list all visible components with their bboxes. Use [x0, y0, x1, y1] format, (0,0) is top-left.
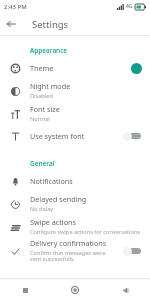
staticText: Settings — [32, 18, 69, 31]
button[interactable]: Toggle — [122, 130, 142, 142]
staticText: Delayed sending — [30, 194, 87, 204]
button[interactable]: Home — [65, 280, 85, 300]
button[interactable]: Delayed sending — [0, 192, 150, 215]
button[interactable]: Font size — [0, 102, 150, 125]
staticText: Theme — [30, 63, 54, 73]
staticText: Font size — [30, 104, 60, 114]
button[interactable]: Toggle — [122, 245, 142, 257]
staticText: Configure swipe actions for conversation… — [30, 228, 140, 236]
staticText: Appearance — [30, 46, 68, 55]
staticText: Confirm that messages were sent successf… — [30, 249, 118, 263]
staticText: Night mode — [30, 81, 71, 91]
button[interactable]: Recent apps — [15, 280, 35, 300]
button[interactable]: Theme colour — [131, 63, 142, 74]
button[interactable]: Swipe actions — [0, 215, 150, 238]
button[interactable]: Notifications — [0, 170, 150, 192]
staticText: Swipe actions — [30, 217, 76, 227]
staticText: Delivery confirmations — [30, 238, 107, 248]
staticText: No delay — [30, 205, 54, 213]
staticText: General — [30, 159, 55, 168]
staticText: Use system font — [30, 131, 85, 141]
button[interactable]: Use system font — [0, 125, 150, 147]
staticText: 2:43 PM — [4, 3, 27, 11]
button[interactable]: Back — [115, 280, 135, 300]
staticText: 4G — [126, 3, 133, 10]
button[interactable]: Theme — [0, 57, 150, 79]
staticText: Normal — [30, 115, 50, 123]
staticText: Notifications — [30, 176, 73, 186]
button[interactable]: Delivery confirmations — [0, 238, 150, 263]
button[interactable]: Night mode — [0, 79, 150, 102]
staticText: Disabled — [30, 92, 53, 100]
button[interactable]: Back — [0, 13, 22, 35]
